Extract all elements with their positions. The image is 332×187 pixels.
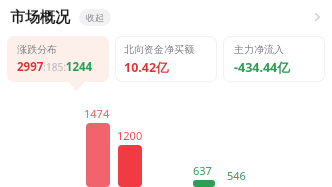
staticText: 1200 bbox=[117, 128, 143, 143]
staticText: 546 bbox=[227, 168, 246, 183]
button[interactable]: 涨跌分布 bbox=[7, 36, 109, 82]
staticText: 收起 bbox=[86, 12, 104, 23]
staticText: 1474 bbox=[84, 106, 110, 121]
button[interactable]: 主力净流入 bbox=[224, 37, 324, 81]
staticText: 北向资金净买额 bbox=[124, 43, 194, 56]
staticText: 637 bbox=[193, 163, 212, 178]
staticText: 市场概况 bbox=[10, 8, 70, 27]
staticText: 10.42亿 bbox=[124, 59, 169, 76]
button[interactable]: 北向资金净买额 bbox=[116, 37, 216, 81]
staticText: 涨跌分布 bbox=[17, 43, 57, 56]
staticText: -434.44亿 bbox=[234, 59, 290, 76]
staticText: 主力净流入 bbox=[234, 43, 284, 56]
button[interactable]: Open market overview bbox=[302, 2, 332, 32]
button[interactable]: 收起 bbox=[79, 9, 111, 26]
staticText: 2997:185:1244 bbox=[17, 59, 93, 75]
